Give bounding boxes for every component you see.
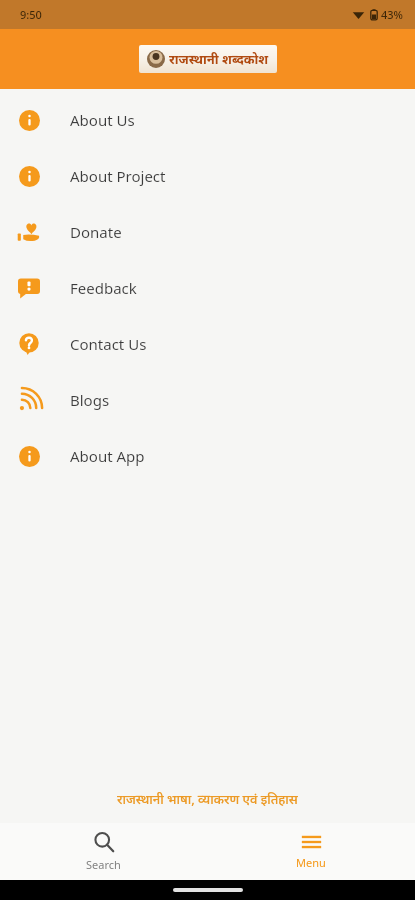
staticText: About Us	[70, 110, 135, 130]
staticText: Contact Us	[70, 334, 147, 354]
staticText: राजस्थानी शब्दकोश	[169, 50, 269, 68]
button[interactable]: Feedback	[0, 260, 415, 316]
staticText: About App	[70, 446, 145, 466]
staticText: 43%	[381, 7, 403, 22]
button[interactable]: About App	[0, 428, 415, 484]
button[interactable]: Search	[62, 827, 145, 876]
staticText: Search	[86, 857, 121, 872]
button[interactable]: Menu	[272, 829, 350, 874]
button[interactable]: Blogs	[0, 372, 415, 428]
button[interactable]: About Project	[0, 148, 415, 204]
staticText: About Project	[70, 166, 166, 186]
button[interactable]: राजस्थानी शब्दकोश	[139, 45, 277, 73]
staticText: 9:50	[20, 7, 42, 22]
staticText: Feedback	[70, 278, 137, 298]
staticText: Blogs	[70, 390, 110, 410]
staticText: राजस्थानी भाषा, व्याकरण एवं इतिहास	[117, 790, 298, 808]
button[interactable]: Donate	[0, 204, 415, 260]
button[interactable]: Contact Us	[0, 316, 415, 372]
button[interactable]: About Us	[0, 92, 415, 148]
staticText: Donate	[70, 222, 122, 242]
staticText: Menu	[296, 855, 326, 870]
